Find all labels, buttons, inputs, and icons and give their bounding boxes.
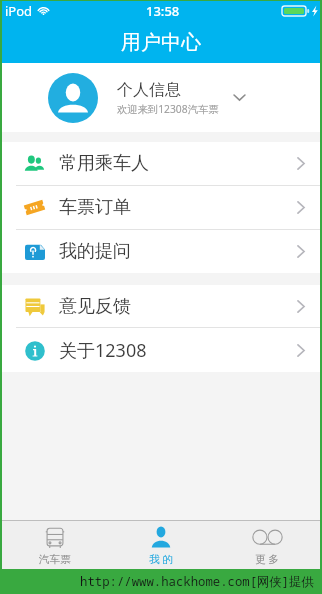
button[interactable]: Profile [108, 521, 214, 569]
button[interactable]: 常用乘车人 [2, 142, 320, 185]
button[interactable]: 个人信息 [2, 63, 320, 132]
staticText: 意见反馈 [59, 295, 131, 318]
button[interactable]: 我的提问 [2, 230, 320, 273]
staticText: 用户中心 [121, 30, 201, 55]
button[interactable]: 车票订单 [2, 186, 320, 229]
button[interactable]: 关于12308 [2, 328, 320, 372]
staticText: 更 多 [255, 552, 279, 566]
staticText: http://www.hackhome.com[网侠]提供 [80, 573, 314, 590]
staticText: 我的提问 [59, 240, 131, 263]
staticText: iPod [5, 2, 33, 20]
button[interactable]: Bus tickets [2, 521, 108, 569]
staticText: 车票订单 [59, 196, 131, 219]
button[interactable]: More [214, 521, 320, 569]
staticText: 13:58 [146, 2, 180, 20]
staticText: 个人信息 [117, 80, 181, 100]
staticText: 我 的 [149, 552, 173, 566]
staticText: 常用乘车人 [59, 152, 149, 175]
staticText: 关于12308 [59, 338, 147, 363]
staticText: 欢迎来到12308汽车票 [117, 102, 219, 116]
staticText: 汽车票 [39, 553, 71, 566]
button[interactable]: 意见反馈 [2, 285, 320, 327]
